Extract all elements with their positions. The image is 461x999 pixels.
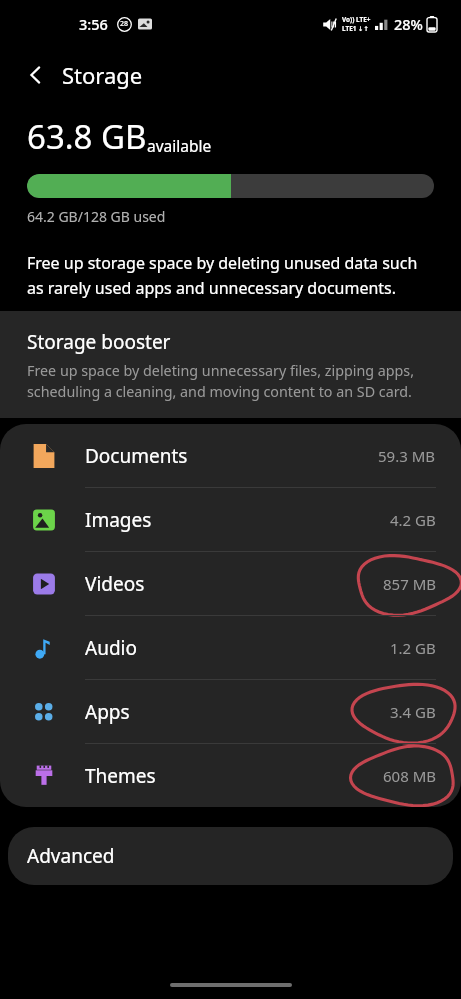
staticText: available — [147, 135, 212, 156]
staticText: Storage — [62, 60, 143, 90]
staticText: Storage booster — [27, 329, 171, 355]
staticText: Advanced — [27, 843, 115, 869]
staticText: 28 — [120, 19, 129, 29]
staticText: Vo)) LTE+ — [342, 15, 371, 24]
staticText: Themes — [85, 763, 156, 789]
staticText: Apps — [85, 699, 130, 725]
staticText: 608 MB — [383, 766, 436, 786]
staticText: 4.2 GB — [390, 510, 436, 530]
staticText: LTE1 ↓↑ — [342, 24, 369, 33]
staticText: Free up space by deleting unnecessary fi… — [27, 361, 434, 402]
staticText: 64.2 GB/128 GB used — [27, 207, 166, 226]
staticText: Documents — [85, 443, 188, 469]
button[interactable]: Back — [14, 53, 58, 97]
button[interactable]: Themes — [0, 744, 461, 807]
button[interactable]: Documents — [0, 424, 461, 487]
staticText: 63.8 GB — [27, 114, 147, 159]
staticText: 3:56 — [79, 14, 108, 34]
staticText: 3.4 GB — [390, 702, 436, 722]
button[interactable]: Storage booster — [0, 311, 461, 418]
staticText: Audio — [85, 635, 137, 661]
button[interactable]: Audio — [0, 616, 461, 679]
button[interactable]: Advanced — [8, 827, 453, 885]
staticText: 1.2 GB — [390, 638, 436, 658]
button[interactable]: Apps — [0, 680, 461, 743]
staticText: 59.3 MB — [378, 446, 436, 466]
staticText: 28% — [394, 14, 423, 34]
staticText: 857 MB — [383, 574, 436, 594]
button[interactable]: Images — [0, 488, 461, 551]
staticText: Videos — [85, 571, 145, 597]
staticText: Free up storage space by deleting unused… — [27, 252, 434, 298]
staticText: Images — [85, 507, 152, 533]
button[interactable]: Videos — [0, 552, 461, 615]
